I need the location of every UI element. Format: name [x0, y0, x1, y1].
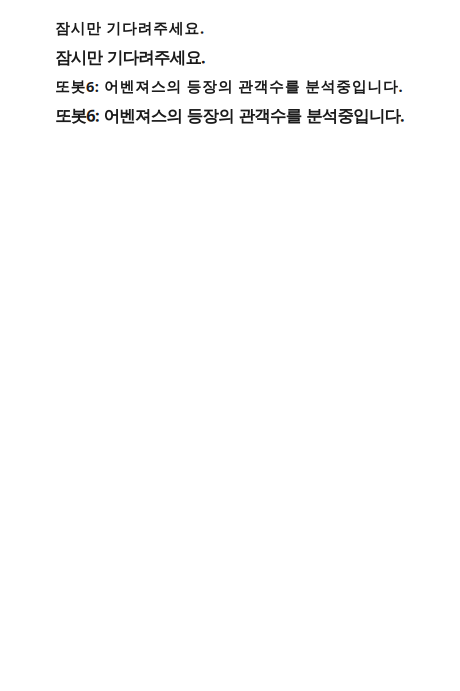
- staticText: 잠시만 기다려주세요.: [55, 46, 206, 68]
- staticText: 잠시만 기다려주세요.: [55, 18, 204, 38]
- staticText: 또봇6: 어벤져스의 등장의 관객수를 분석중입니다.: [55, 104, 405, 127]
- staticText: 또봇6: 어벤져스의 등장의 관객수를 분석중입니다.: [55, 76, 402, 96]
